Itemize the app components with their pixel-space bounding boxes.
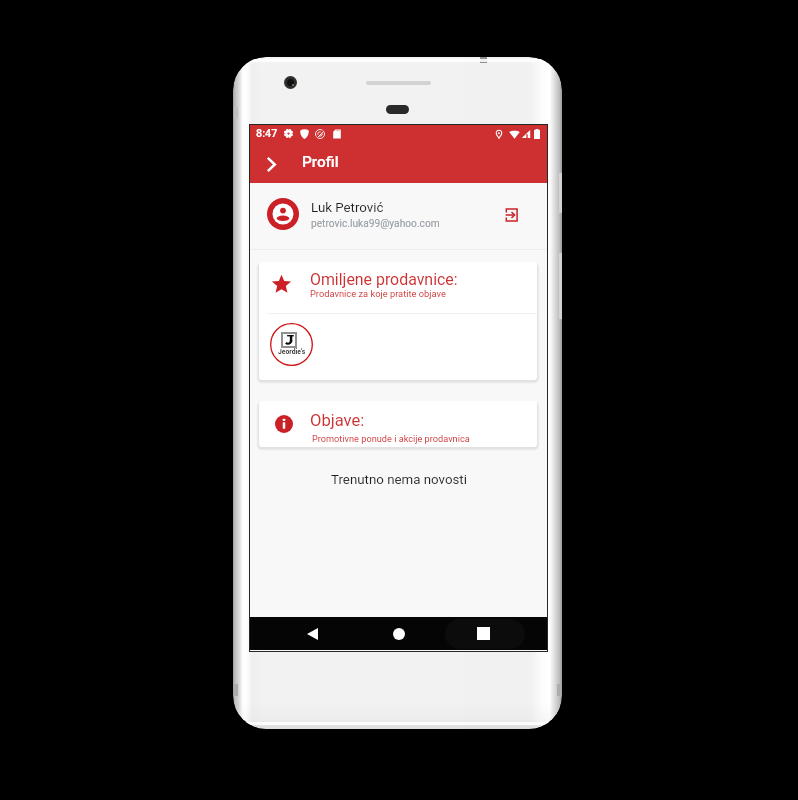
button[interactable]: Omiljene prodavnice: bbox=[259, 262, 537, 313]
button[interactable]: Home bbox=[376, 618, 421, 649]
staticText: Promotivne ponude i akcije prodavnica bbox=[312, 433, 470, 444]
staticText: Trenutno nema novosti bbox=[331, 472, 467, 488]
button[interactable]: Back bbox=[290, 618, 335, 649]
staticText: Luk Petrović bbox=[311, 200, 384, 216]
staticText: Objave: bbox=[310, 411, 365, 430]
staticText: Prodavnice za koje pratite objave bbox=[310, 288, 446, 299]
button[interactable]: Luk Petrović bbox=[250, 183, 547, 250]
staticText: petrovic.luka99@yahoo.com bbox=[311, 218, 440, 230]
button[interactable]: Objave: bbox=[259, 401, 537, 447]
staticText: Jeordie's bbox=[278, 348, 306, 356]
button[interactable]: Log out bbox=[491, 195, 531, 235]
button[interactable]: Recent apps bbox=[461, 618, 506, 649]
button[interactable]: Open navigation drawer bbox=[256, 145, 285, 183]
staticText: 8:47 bbox=[256, 127, 278, 140]
staticText: Profil bbox=[302, 153, 339, 171]
staticText: Omiljene prodavnice: bbox=[310, 270, 458, 289]
